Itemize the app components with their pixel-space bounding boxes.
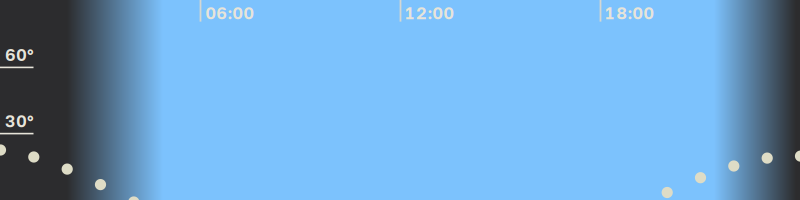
staticText: 2 (416, 3, 426, 23)
staticText: 0 (632, 3, 643, 23)
staticText: 0 (243, 3, 254, 23)
staticText: ° (27, 44, 34, 65)
group: 0 (205, 3, 254, 23)
staticText: 1 (605, 3, 614, 23)
staticText: : (227, 3, 232, 23)
staticText: ° (27, 111, 34, 131)
staticText: 1 (405, 3, 414, 23)
staticText: 0 (205, 3, 216, 23)
staticText: 3 (5, 111, 15, 131)
staticText: 0 (443, 3, 454, 23)
staticText: 0 (432, 3, 443, 23)
staticText: 0 (643, 3, 654, 23)
group: 3 (5, 111, 34, 131)
staticText: : (427, 3, 432, 23)
group: 1 (405, 3, 454, 23)
staticText: 0 (16, 44, 27, 65)
staticText: 6 (5, 44, 16, 65)
staticText: : (627, 3, 632, 23)
group: 1 (605, 3, 654, 23)
group: 6 (5, 44, 34, 65)
staticText: 8 (616, 3, 627, 23)
staticText: 6 (216, 3, 227, 23)
staticText: 0 (232, 3, 243, 23)
staticText: 0 (16, 111, 27, 131)
